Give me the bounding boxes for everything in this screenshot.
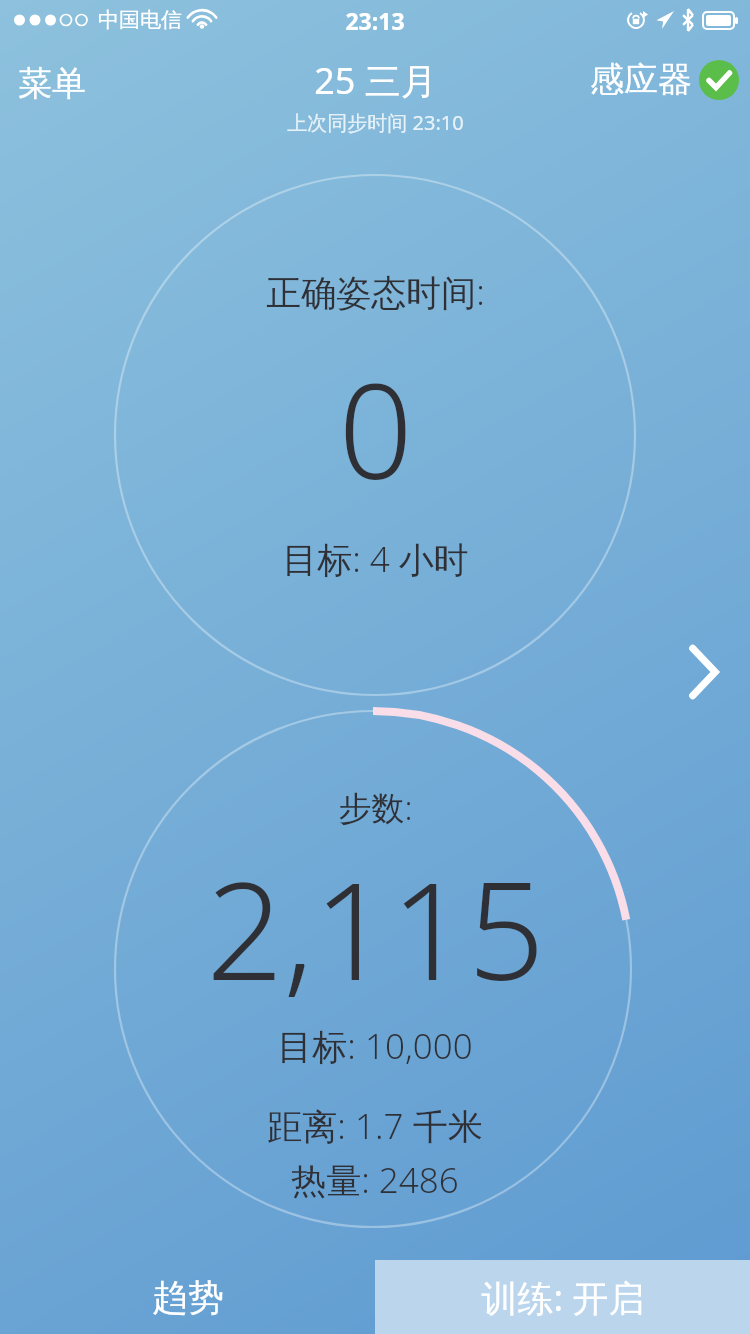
button[interactable]: 趋势 <box>0 1260 375 1334</box>
staticText: 菜单 <box>18 62 86 105</box>
staticText: 距离: 1.7 千米 <box>267 1102 483 1150</box>
staticText: 2,115 <box>206 836 545 1020</box>
staticText: 目标: 4 小时 <box>282 535 469 583</box>
staticText: 25 三月 <box>314 56 437 105</box>
staticText: 趋势 <box>152 1275 224 1320</box>
staticText: 正确姿态时间: <box>266 268 485 316</box>
staticText: 步数: <box>338 785 413 830</box>
button[interactable]: 感应器 <box>590 58 740 101</box>
staticText: 中国电信 <box>98 7 182 33</box>
staticText: 热量: 2486 <box>291 1156 459 1204</box>
button[interactable]: 菜单 <box>14 58 90 109</box>
staticText: 上次同步时间 23:10 <box>287 109 464 136</box>
staticText: 目标: 10,000 <box>277 1022 473 1070</box>
button[interactable]: 训练: 开启 <box>375 1260 750 1334</box>
staticText: 23:13 <box>345 5 405 36</box>
staticText: 感应器 <box>590 58 692 101</box>
other: Sensor connected <box>698 59 740 101</box>
staticText: 0 <box>338 340 413 517</box>
button[interactable]: Next <box>684 636 738 708</box>
staticText: 训练: 开启 <box>481 1273 645 1322</box>
